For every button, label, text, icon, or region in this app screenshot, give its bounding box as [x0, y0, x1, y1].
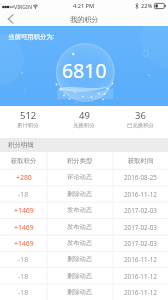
staticText: 当前可用积分为:	[8, 32, 55, 41]
staticText: 发布动态	[67, 206, 93, 214]
staticText: 2017-02-03	[124, 206, 157, 215]
button[interactable]	[0, 169, 168, 185]
staticText: -18	[18, 190, 29, 199]
staticText: 2017-02-03	[124, 239, 157, 248]
button[interactable]	[0, 251, 168, 267]
button[interactable]	[0, 284, 168, 300]
staticText: 36	[135, 109, 146, 122]
staticText: 积分类型	[67, 157, 93, 165]
staticText: 删除动态	[67, 272, 93, 280]
staticText: +1469	[14, 206, 34, 215]
button[interactable]: 36	[112, 106, 168, 119]
staticText: -18	[18, 272, 29, 281]
button[interactable]: Back	[0, 12, 22, 26]
staticText: 2017-02-03	[124, 223, 157, 232]
button[interactable]	[0, 235, 168, 251]
staticText: 累计积分	[17, 122, 39, 129]
staticText: 2016-11-12	[124, 255, 157, 264]
staticText: 2016-11-12	[124, 272, 157, 281]
staticText: 我的积分	[70, 15, 99, 24]
staticText: +1469	[14, 223, 34, 232]
staticText: -18	[18, 288, 29, 297]
staticText: 22%	[141, 2, 153, 10]
button[interactable]	[0, 202, 168, 218]
staticText: -18	[18, 255, 29, 264]
staticText: +1469	[14, 239, 34, 248]
button[interactable]	[0, 268, 168, 284]
staticText: +280	[16, 173, 32, 182]
button[interactable]	[0, 186, 168, 202]
staticText: 2016-11-12	[124, 288, 157, 297]
staticText: 2016-11-12	[124, 190, 157, 199]
staticText: 6810	[62, 57, 107, 84]
staticText: 512	[20, 109, 37, 122]
staticText: 删除动态	[67, 288, 93, 296]
staticText: 发布动态	[67, 223, 93, 231]
staticText: 删除动态	[67, 255, 93, 263]
staticText: 积分明细	[8, 141, 34, 149]
staticText: 获取积分	[11, 157, 37, 165]
staticText: 2016-08-25	[124, 173, 157, 182]
staticText: 4:21 PM	[73, 2, 95, 10]
button[interactable]	[0, 219, 168, 235]
staticText: 获取时间	[128, 157, 154, 165]
staticText: 删除动态	[67, 190, 93, 198]
button[interactable]: 49	[56, 106, 112, 119]
staticText: 49	[79, 109, 90, 122]
staticText: 兑换积分	[73, 122, 95, 129]
staticText: 评论动态	[67, 173, 93, 181]
staticText: 已兑换积分	[127, 122, 154, 129]
button[interactable]: 512	[0, 106, 56, 119]
staticText: VIRGIN	[14, 3, 32, 10]
staticText: 发布动态	[67, 239, 93, 247]
